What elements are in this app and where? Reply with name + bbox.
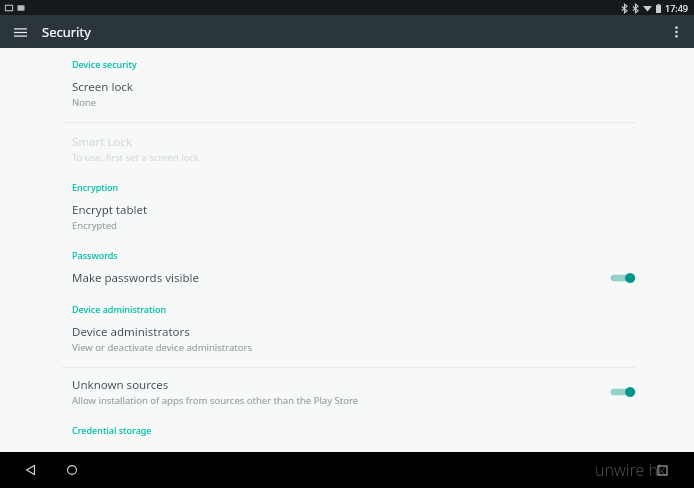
button[interactable]: Screen lock (0, 74, 694, 114)
button[interactable]: Device administrators (0, 319, 694, 359)
staticText: Allow installation of apps from sources … (72, 394, 358, 407)
staticText: To use, first set a screen lock (72, 151, 200, 164)
button[interactable]: Make passwords visible (0, 265, 694, 291)
staticText: View or deactivate device administrators (72, 341, 252, 354)
button[interactable]: Encrypt tablet (0, 197, 694, 237)
button[interactable]: More options (663, 19, 689, 45)
staticText: unwire hk (595, 459, 666, 481)
button[interactable]: Open navigation drawer (7, 19, 33, 45)
staticText: 17:49 (665, 2, 689, 14)
staticText: Device administrators (72, 324, 190, 340)
button[interactable]: Smart Lock (0, 129, 694, 169)
staticText: Encryption (72, 181, 119, 193)
staticText: Credential storage (72, 424, 152, 436)
button[interactable]: Toggle, on (610, 384, 638, 400)
staticText: Make passwords visible (72, 270, 199, 286)
staticText: Device administration (72, 303, 167, 315)
staticText: Smart Lock (72, 134, 133, 150)
button[interactable]: Unknown sources (0, 372, 694, 412)
staticText: Screen lock (72, 79, 134, 95)
staticText: Passwords (72, 249, 118, 261)
staticText: None (72, 96, 97, 109)
staticText: Security (42, 23, 91, 41)
button[interactable]: Back (18, 458, 42, 482)
staticText: Unknown sources (72, 377, 169, 393)
staticText: Encrypt tablet (72, 202, 148, 218)
button[interactable]: Recent apps (650, 458, 674, 482)
button[interactable]: Home (60, 458, 84, 482)
staticText: Encrypted (72, 219, 117, 232)
staticText: Device security (72, 58, 137, 70)
button[interactable]: Toggle, on (610, 270, 638, 286)
